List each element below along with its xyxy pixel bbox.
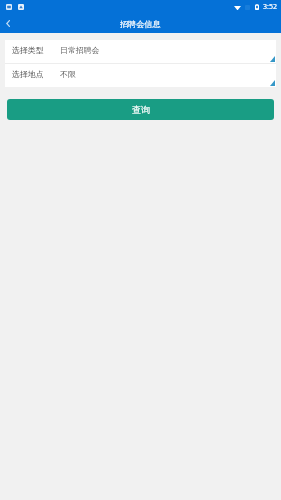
- staticText: 招聘会信息: [120, 19, 161, 29]
- staticText: 选择类型: [12, 45, 44, 55]
- staticText: 不限: [60, 69, 76, 79]
- staticText: 日常招聘会: [60, 45, 100, 55]
- button[interactable]: 选择类型: [5, 40, 276, 63]
- staticText: 查询: [132, 104, 150, 115]
- staticText: 选择地点: [12, 69, 44, 79]
- button[interactable]: 查询: [7, 99, 274, 120]
- button[interactable]: 选择地点: [5, 64, 276, 87]
- button[interactable]: Back: [0, 13, 16, 33]
- staticText: 3:52: [263, 2, 277, 12]
